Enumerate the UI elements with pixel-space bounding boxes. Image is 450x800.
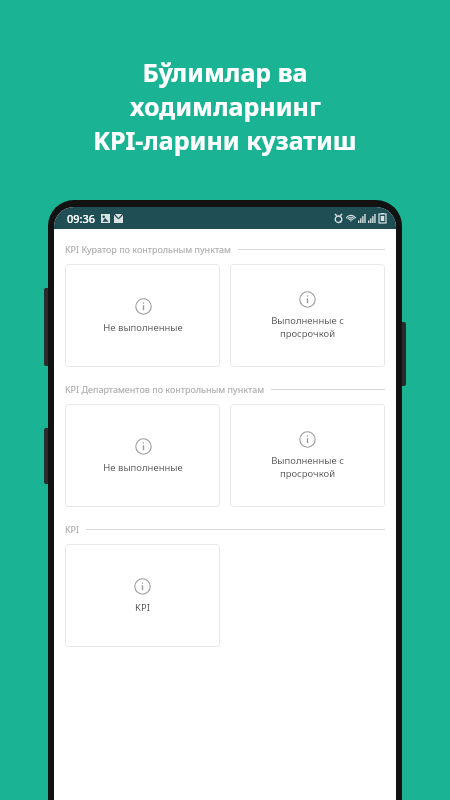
other: Info: [299, 431, 316, 448]
staticText: Не выполненные: [103, 461, 183, 474]
staticText: ходимларнинг: [130, 89, 321, 123]
other: Info: [299, 291, 316, 308]
other: Info: [135, 298, 152, 315]
staticText: 09:36: [67, 211, 96, 226]
other: Info: [134, 578, 151, 595]
staticText: KPI: [135, 601, 150, 614]
staticText: Бўлимлар ва: [142, 55, 308, 89]
staticText: KPI-ларини кузатиш: [93, 123, 357, 157]
button[interactable]: Info: [65, 544, 220, 647]
button[interactable]: Info: [65, 264, 220, 367]
staticText: Выполненные с просрочкой: [271, 314, 344, 340]
button[interactable]: Info: [65, 404, 220, 507]
staticText: KPI Куратор по контрольным пунктам: [65, 243, 232, 255]
staticText: Выполненные с просрочкой: [271, 454, 344, 480]
button[interactable]: Info: [230, 404, 385, 507]
other: Info: [135, 438, 152, 455]
staticText: Не выполненные: [103, 321, 183, 334]
button[interactable]: Info: [230, 264, 385, 367]
staticText: KPI: [65, 523, 80, 535]
staticText: KPI Департаментов по контрольным пунктам: [65, 383, 265, 395]
